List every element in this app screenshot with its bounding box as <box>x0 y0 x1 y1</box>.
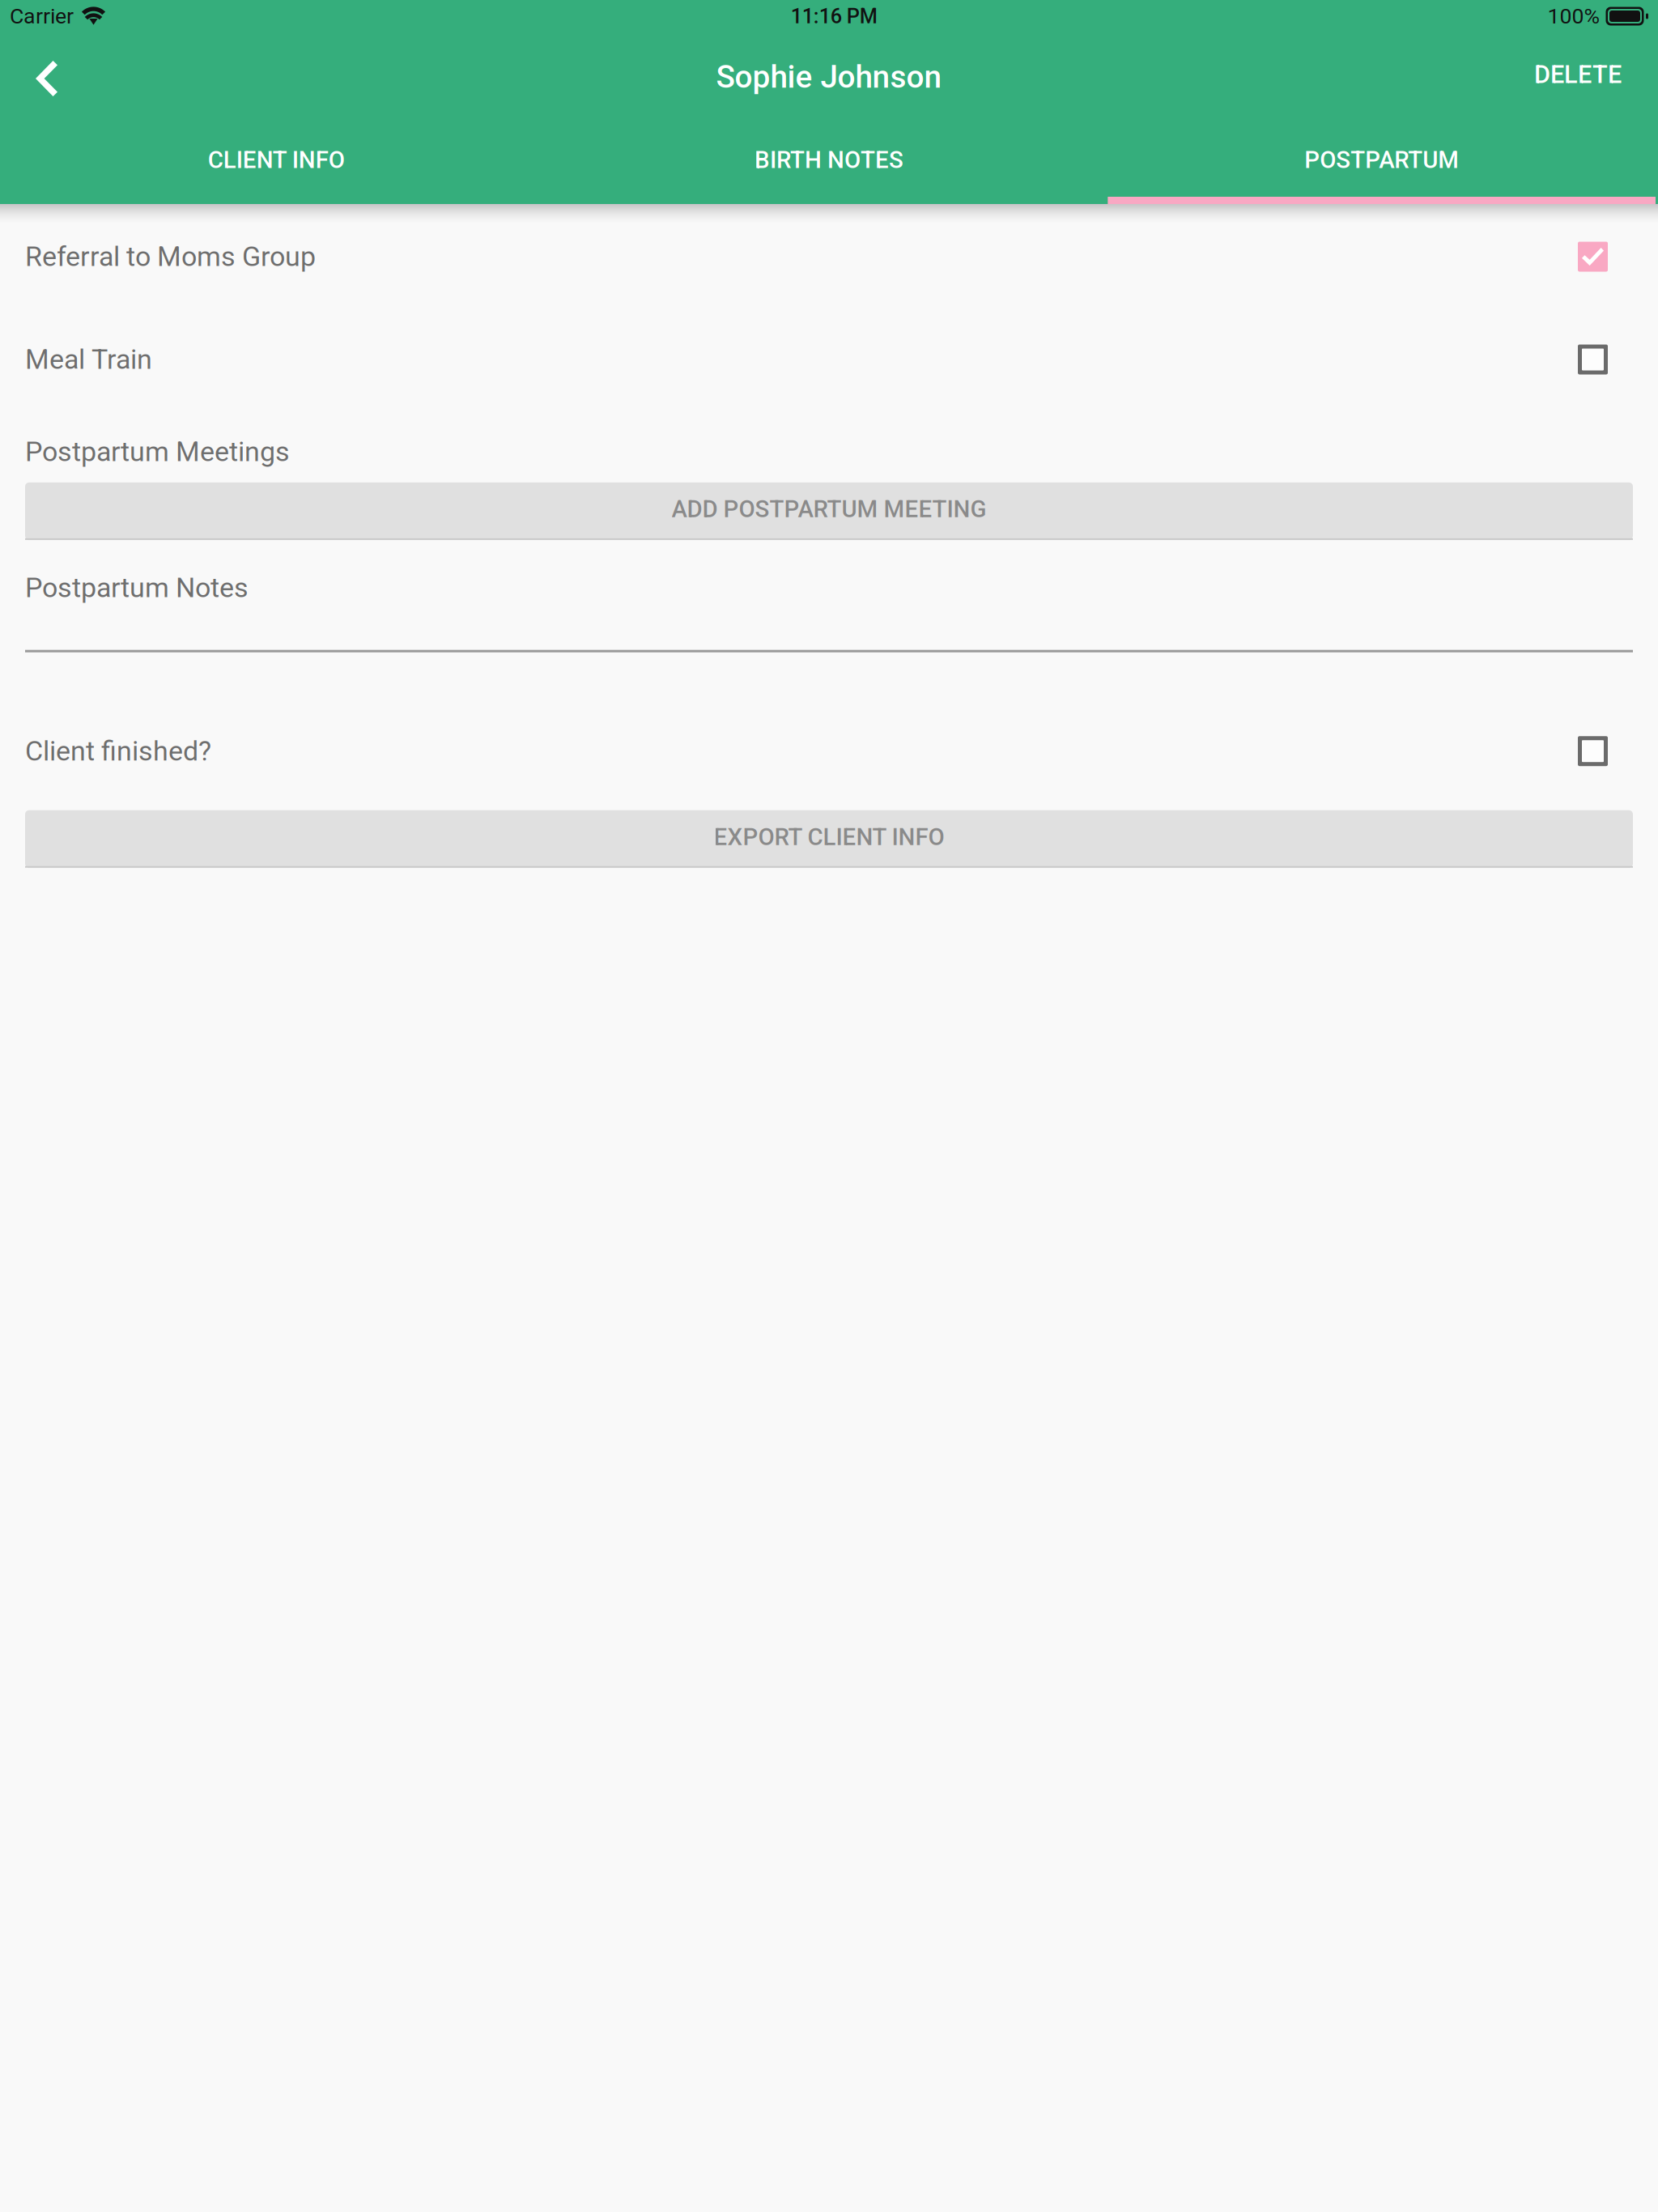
button[interactable]: EXPORT CLIENT INFO <box>25 810 1633 868</box>
staticText: Carrier <box>10 4 74 29</box>
staticText: EXPORT CLIENT INFO <box>714 823 944 851</box>
staticText: Client finished? <box>25 735 211 767</box>
button[interactable]: DELETE <box>1513 39 1658 115</box>
button[interactable]: Client finished? <box>0 733 1658 769</box>
staticText: Postpartum Notes <box>25 571 249 604</box>
staticText: POSTPARTUM <box>1304 146 1459 174</box>
staticText: Meal Train <box>25 343 152 376</box>
staticText: Referral to Moms Group <box>25 241 316 273</box>
staticText: 100% <box>1547 4 1600 29</box>
button[interactable]: POSTPARTUM <box>1105 115 1658 204</box>
staticText: Postpartum Meetings <box>25 436 290 468</box>
staticText: Sophie Johnson <box>716 59 942 95</box>
staticText: ADD POSTPARTUM MEETING <box>672 495 986 523</box>
button[interactable]: Back <box>0 39 80 115</box>
staticText: CLIENT INFO <box>208 146 345 174</box>
staticText: DELETE <box>1534 60 1622 89</box>
button[interactable]: BIRTH NOTES <box>553 115 1105 204</box>
staticText: 11:16 PM <box>791 4 877 28</box>
button[interactable]: Referral to Moms Group <box>0 204 1658 309</box>
button[interactable]: Meal Train <box>0 309 1658 410</box>
button[interactable]: CLIENT INFO <box>0 115 553 204</box>
staticText: BIRTH NOTES <box>755 146 903 174</box>
button[interactable]: ADD POSTPARTUM MEETING <box>25 482 1633 540</box>
